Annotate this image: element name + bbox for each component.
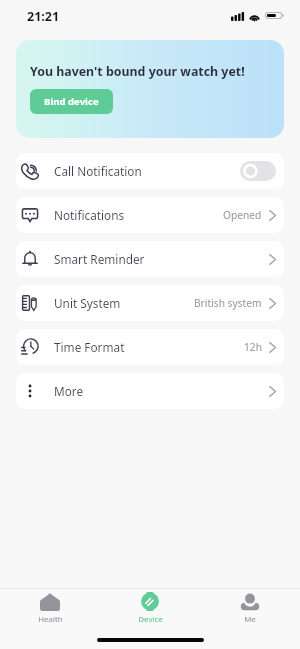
staticText: 12h xyxy=(244,340,262,354)
staticText: You haven't bound your watch yet! xyxy=(30,63,245,80)
staticText: Health xyxy=(38,614,63,625)
button[interactable]: Smart Reminder xyxy=(16,241,284,277)
button[interactable]: Me xyxy=(200,589,300,625)
button[interactable]: Call Notification toggle xyxy=(240,161,276,181)
button[interactable]: More xyxy=(16,373,284,409)
staticText: Me xyxy=(244,614,256,625)
staticText: More xyxy=(54,383,84,399)
button[interactable]: Notifications xyxy=(16,197,284,233)
button[interactable]: Health xyxy=(0,589,100,625)
staticText: Device xyxy=(138,614,163,625)
staticText: Call Notification xyxy=(54,163,142,179)
button[interactable]: Time Format xyxy=(16,329,284,365)
staticText: Notifications xyxy=(54,207,125,223)
staticText: British system xyxy=(194,296,262,310)
button[interactable]: Bind device xyxy=(30,89,113,114)
button[interactable]: Device xyxy=(100,589,200,625)
staticText: 21:21 xyxy=(27,8,60,25)
staticText: Smart Reminder xyxy=(54,251,145,267)
staticText: Unit System xyxy=(54,295,121,311)
staticText: Bind device xyxy=(44,95,99,108)
button[interactable]: Unit System xyxy=(16,285,284,321)
staticText: Opened xyxy=(223,208,262,222)
button[interactable]: Call Notification xyxy=(16,153,284,189)
staticText: Time Format xyxy=(54,339,125,355)
